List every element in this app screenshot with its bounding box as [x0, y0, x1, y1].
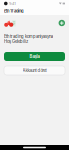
staticText: Eth trading kompaniyasyna Hoş Gelebiliz	[4, 34, 53, 44]
staticText: 9:41	[9, 1, 16, 6]
staticText: Eth Trading	[4, 9, 24, 13]
staticText: Başla	[29, 54, 39, 59]
staticText: Akkaunt döret	[22, 68, 46, 73]
button[interactable]: Akkaunt döret	[4, 66, 65, 75]
button[interactable]: Başla	[4, 52, 65, 61]
